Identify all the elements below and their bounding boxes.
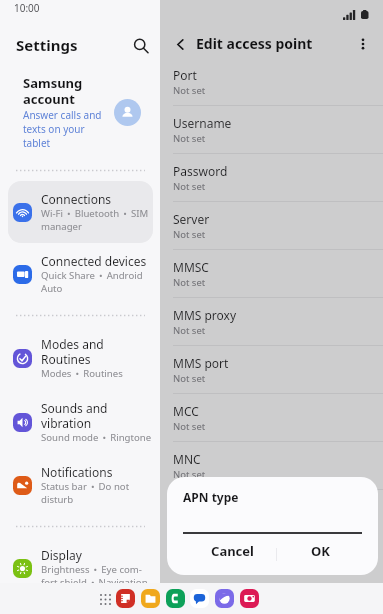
- button[interactable]: Search: [128, 33, 154, 59]
- staticText: Modes • Routines: [41, 367, 123, 380]
- staticText: Not set: [173, 84, 206, 97]
- staticText: MMS proxy: [173, 307, 237, 323]
- button[interactable]: Connected devices: [8, 243, 153, 305]
- staticText: MCC: [173, 403, 199, 419]
- button[interactable]: MCC: [160, 394, 383, 441]
- button[interactable]: Phone: [166, 589, 185, 608]
- staticText: Sounds and vibration: [41, 400, 108, 431]
- staticText: Not set: [173, 180, 206, 193]
- button[interactable]: Password: [160, 154, 383, 201]
- staticText: Not set: [173, 228, 206, 241]
- button[interactable]: Sounds and vibration: [8, 390, 153, 454]
- staticText: MNC: [173, 451, 201, 467]
- staticText: Not set: [173, 468, 206, 481]
- staticText: Display: [41, 547, 82, 563]
- staticText: Sound mode • Ringtone: [41, 431, 152, 444]
- staticText: Brightness • Eye com- fort shield • Navi…: [41, 563, 148, 589]
- button[interactable]: MNC: [160, 442, 383, 489]
- staticText: Server: [173, 211, 210, 227]
- button[interactable]: Cancel: [167, 534, 276, 575]
- staticText: Settings: [16, 35, 78, 55]
- button[interactable]: Camera: [240, 589, 259, 608]
- staticText: OK: [311, 542, 330, 560]
- button[interactable]: MMS proxy: [160, 298, 383, 345]
- button[interactable]: Back: [168, 32, 192, 56]
- staticText: MMS port: [173, 355, 229, 371]
- staticText: Not set: [173, 324, 206, 337]
- staticText: Modes and Routines: [41, 336, 104, 367]
- button[interactable]: Server: [160, 202, 383, 249]
- button[interactable]: All apps: [96, 590, 114, 608]
- staticText: Notifications: [41, 464, 113, 480]
- button[interactable]: Connections: [8, 181, 153, 243]
- staticText: MMSC: [173, 259, 209, 275]
- staticText: Connections: [41, 191, 112, 207]
- staticText: Edit access point: [196, 34, 313, 53]
- button[interactable]: Notifications: [8, 454, 153, 516]
- button[interactable]: Messages: [190, 589, 209, 608]
- staticText: APN type: [173, 499, 225, 515]
- button[interactable]: MMSC: [160, 250, 383, 297]
- staticText: Status bar • Do not disturb: [41, 480, 130, 506]
- button[interactable]: Modes and Routines: [8, 326, 153, 390]
- button[interactable]: Display: [8, 537, 153, 599]
- staticText: Answer calls and texts on your tablet: [23, 108, 102, 150]
- staticText: Connected devices: [41, 253, 147, 269]
- staticText: Not set: [173, 420, 206, 433]
- staticText: Username: [173, 115, 232, 131]
- staticText: Port: [173, 67, 197, 83]
- staticText: Not set: [173, 276, 206, 289]
- button[interactable]: Samsung Internet: [215, 589, 234, 608]
- staticText: Wi-Fi • Bluetooth • SIM manager: [41, 207, 149, 233]
- button[interactable]: My Files: [141, 589, 160, 608]
- button[interactable]: APN type: [160, 490, 383, 537]
- button[interactable]: More options: [351, 32, 375, 56]
- staticText: Quick Share • Android Auto: [41, 269, 143, 295]
- staticText: Not set: [173, 372, 206, 385]
- button[interactable]: OK: [277, 534, 378, 575]
- staticText: Not set: [173, 132, 206, 145]
- button[interactable]: Username: [160, 106, 383, 153]
- staticText: 10:00: [14, 1, 40, 15]
- button[interactable]: MMS port: [160, 346, 383, 393]
- button[interactable]: Samsung Notes: [116, 589, 135, 608]
- button[interactable]: Samsung account: [0, 64, 160, 160]
- staticText: Password: [173, 163, 228, 179]
- staticText: Samsung account: [23, 74, 83, 107]
- button[interactable]: Port: [160, 58, 383, 105]
- staticText: Cancel: [211, 542, 254, 560]
- staticText: APN type: [183, 489, 239, 505]
